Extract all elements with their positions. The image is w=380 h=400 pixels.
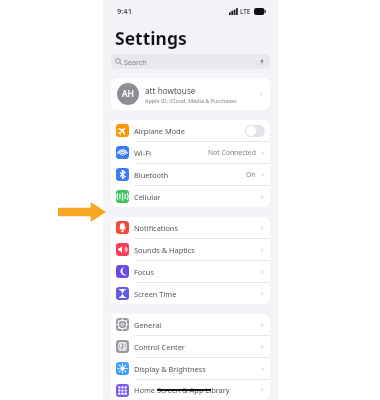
staticText: AH [122,88,134,100]
staticText: Display & Brightness [134,364,206,374]
staticText: att howtouse [145,85,196,96]
staticText: Cellular [134,192,161,202]
staticText: Home Screen & App Library [134,385,230,395]
staticText: Apple ID, iCloud, Media & Purchases [145,97,237,104]
staticText: Notifications [134,223,178,233]
button[interactable]: Display & Brightness [111,358,270,379]
button[interactable]: Home Screen & App Library [111,380,270,400]
button[interactable]: Bluetooth [111,164,270,185]
button[interactable]: AH [111,78,270,110]
staticText: Airplane Mode [134,126,185,136]
button[interactable]: Search [111,54,270,69]
staticText: Control Center [134,342,185,352]
button[interactable]: Airplane Mode toggle [245,125,265,137]
button[interactable]: General [111,314,270,335]
staticText: Wi-Fi [134,148,151,158]
button[interactable]: Focus [111,261,270,282]
button[interactable]: Sounds & Haptics [111,239,270,260]
staticText: General [134,320,162,330]
button[interactable]: Voice search [258,58,266,66]
button[interactable]: Airplane Mode [111,120,270,141]
staticText: Bluetooth [134,170,169,180]
staticText: Focus [134,267,154,277]
staticText: Screen Time [134,289,177,299]
staticText: On [246,170,256,179]
staticText: Search [124,57,147,67]
staticText: Settings [115,26,187,50]
button[interactable]: Control Center [111,336,270,357]
staticText: Sounds & Haptics [134,245,195,255]
staticText: LTE [240,7,251,15]
button[interactable]: Screen Time [111,283,270,304]
button[interactable]: Notifications [111,217,270,238]
staticText: 9:41 [117,6,132,16]
button[interactable]: Cellular [111,186,270,207]
staticText: Not Connected [208,148,256,157]
button[interactable]: Wi-Fi [111,142,270,163]
